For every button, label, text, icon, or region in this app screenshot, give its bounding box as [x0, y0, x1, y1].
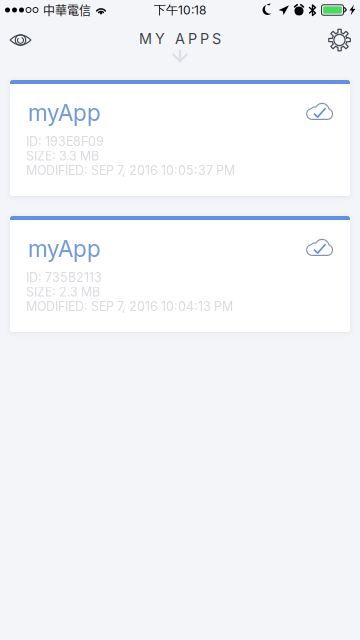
staticText: M Y A P P S: [139, 30, 221, 47]
staticText: MODIFIED: SEP 7, 2016 10:04:13 PM: [26, 299, 233, 314]
button[interactable]: Preview: [0, 20, 41, 60]
staticText: myApp: [28, 99, 101, 126]
staticText: myApp: [28, 235, 101, 262]
staticText: MODIFIED: SEP 7, 2016 10:05:37 PM: [26, 163, 235, 178]
staticText: ID: 193E8F09: [26, 134, 104, 149]
staticText: SIZE: 3.3 MB: [26, 148, 99, 163]
button[interactable]: myApp: [10, 216, 350, 332]
staticText: SIZE: 2.3 MB: [26, 284, 100, 299]
staticText: ID: 735B2113: [26, 270, 102, 285]
staticText: 中華電信: [43, 1, 91, 19]
staticText: 下午10:18: [154, 2, 206, 17]
button[interactable]: myApp: [10, 80, 350, 196]
button[interactable]: Settings: [319, 20, 360, 60]
